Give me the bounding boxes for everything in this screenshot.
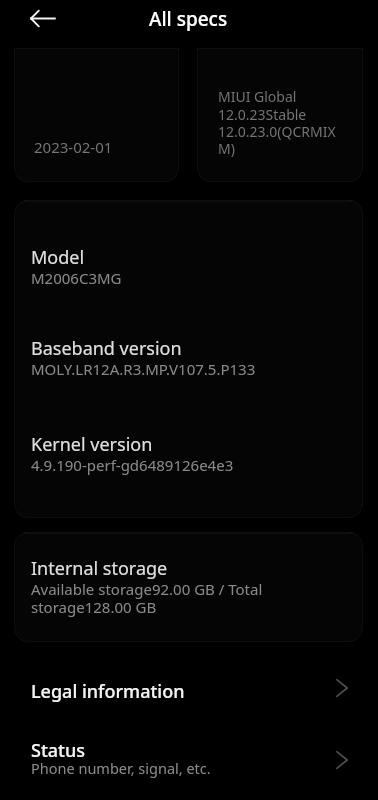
staticText: Kernel version: [31, 432, 153, 457]
staticText: Model: [31, 245, 85, 270]
staticText: Internal storage: [31, 556, 168, 581]
button[interactable]: Legal information: [0, 655, 378, 715]
button[interactable]: Baseband version: [31, 336, 346, 384]
button[interactable]: Model: [31, 245, 346, 293]
staticText: Legal information: [31, 679, 185, 704]
staticText: Baseband version: [31, 336, 182, 361]
button[interactable]: Status: [0, 715, 378, 800]
staticText: 2023-02-01: [34, 137, 113, 157]
staticText: M2006C3MG: [31, 268, 122, 288]
staticText: MIUI Global 12.0.23Stable 12.0.23.0(QCRM…: [218, 87, 336, 158]
button[interactable]: Kernel version: [31, 432, 346, 480]
button[interactable]: Back: [14, 0, 58, 38]
staticText: 4.9.190-perf-gd6489126e4e3: [31, 455, 234, 475]
staticText: Status: [31, 738, 86, 763]
staticText: Phone number, signal, etc.: [31, 758, 211, 778]
button[interactable]: Internal storage: [31, 556, 276, 595]
staticText: MOLY.LR12A.R3.MP.V107.5.P133: [31, 359, 256, 379]
staticText: Available storage92.00 GB / Total storag…: [31, 579, 276, 618]
staticText: All specs: [149, 6, 228, 32]
